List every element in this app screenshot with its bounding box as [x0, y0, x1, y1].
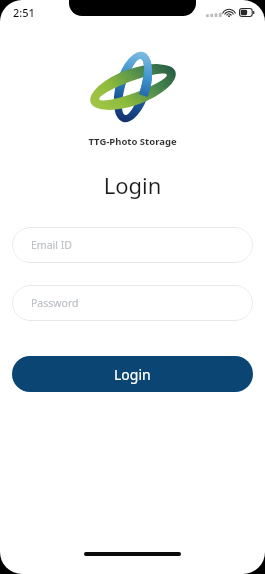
- staticText: 2:51: [13, 5, 35, 20]
- staticText: Email ID: [31, 238, 72, 252]
- staticText: Password: [31, 296, 79, 310]
- staticText: TTG-Photo Storage: [0, 135, 265, 148]
- staticText: Login: [0, 170, 265, 200]
- button[interactable]: Login: [12, 356, 253, 392]
- button[interactable]: Password: [12, 285, 253, 321]
- staticText: Login: [114, 365, 151, 384]
- button[interactable]: Email ID: [12, 227, 253, 263]
